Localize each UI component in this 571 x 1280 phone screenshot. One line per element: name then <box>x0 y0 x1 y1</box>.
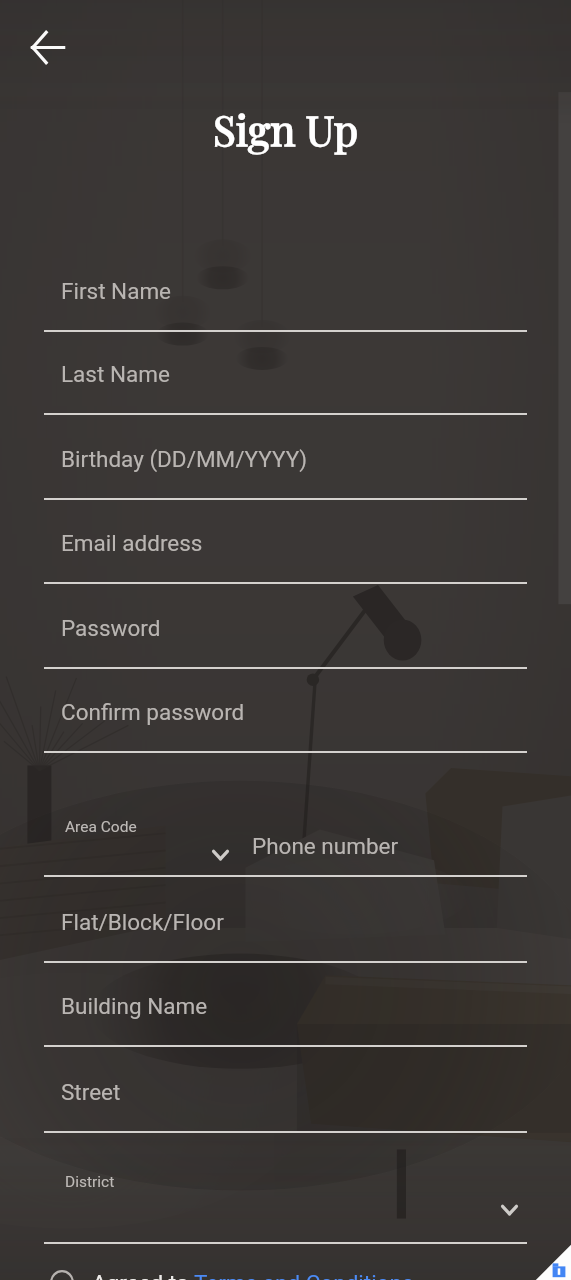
staticText: Area Code <box>65 818 137 836</box>
button[interactable]: Building Name <box>44 968 527 1046</box>
staticText: Street <box>61 1079 121 1105</box>
staticText: Birthday (DD/MM/YYYY) <box>61 446 308 472</box>
staticText: District <box>65 1173 115 1191</box>
staticText: Sign Up <box>213 101 359 157</box>
button[interactable]: Back <box>14 14 80 80</box>
button[interactable]: First Name <box>44 253 527 331</box>
button[interactable]: Street <box>44 1054 527 1132</box>
staticText: First Name <box>61 278 172 304</box>
button[interactable]: Birthday (DD/MM/YYYY) <box>44 421 527 499</box>
staticText: Flat/Block/Floor <box>61 909 224 935</box>
button[interactable]: Email address <box>44 505 527 583</box>
button[interactable] <box>44 1132 527 1243</box>
button[interactable]: Agreed to Terms and Conditions <box>44 1256 464 1280</box>
button[interactable]: Select area code <box>210 845 231 866</box>
staticText: Confirm password <box>61 699 245 725</box>
button[interactable]: Select district <box>499 1200 520 1221</box>
button[interactable]: Password <box>44 590 527 668</box>
button[interactable] <box>44 752 527 876</box>
staticText: Last Name <box>61 361 170 387</box>
staticText: Email address <box>61 530 203 556</box>
staticText: Phone number <box>252 833 399 859</box>
staticText: Building Name <box>61 993 208 1019</box>
staticText: Agreed to Terms and Conditions <box>92 1270 414 1280</box>
button[interactable]: Flat/Block/Floor <box>44 884 527 962</box>
button[interactable]: Last Name <box>44 336 527 414</box>
button[interactable]: Confirm password <box>44 674 527 752</box>
staticText: Password <box>61 615 161 641</box>
